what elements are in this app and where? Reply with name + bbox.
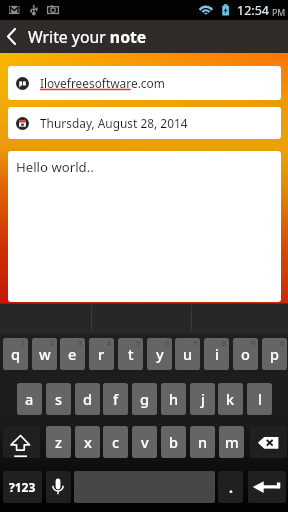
button[interactable]: Backspace (250, 426, 287, 458)
staticText: Ilovefreesoftware.com (40, 75, 165, 91)
staticText: k (226, 389, 235, 409)
button[interactable]: k (218, 383, 243, 415)
button[interactable]: e (60, 338, 85, 370)
button[interactable]: j (190, 383, 215, 415)
button[interactable]: h (161, 383, 186, 415)
button[interactable]: Symbols (3, 471, 42, 503)
staticText: PM (272, 7, 286, 19)
button[interactable]: Shift (3, 426, 40, 458)
button[interactable]: Ilovefreesoftware.com (8, 66, 281, 100)
staticText: b (169, 432, 178, 452)
staticText: f (113, 389, 119, 409)
staticText: z (55, 432, 62, 452)
button[interactable]: f (103, 383, 128, 415)
staticText: 4 (107, 339, 112, 349)
staticText: w (39, 344, 51, 364)
staticText: v (141, 432, 149, 452)
button[interactable]: Voice input (46, 471, 71, 503)
staticText: l (258, 389, 262, 409)
staticText: 8 (222, 339, 227, 349)
staticText: q (11, 344, 20, 364)
staticText: h (169, 389, 179, 409)
button[interactable]: b (161, 426, 186, 458)
button[interactable]: y (147, 338, 172, 370)
button[interactable]: m (219, 426, 244, 458)
staticText: 3 (78, 339, 83, 349)
button[interactable]: u (175, 338, 200, 370)
button[interactable]: l (247, 383, 272, 415)
staticText: i (215, 344, 219, 364)
staticText: a (25, 389, 34, 409)
staticText: 12:54 (237, 2, 269, 19)
staticText: p (270, 344, 279, 364)
button[interactable]: t (118, 338, 143, 370)
staticText: 6 (165, 339, 170, 349)
other: Back (0, 20, 28, 53)
button[interactable]: q (3, 338, 28, 370)
button[interactable]: Back (0, 20, 288, 53)
staticText: Hello world.. (16, 158, 94, 176)
staticText: 9 (251, 339, 256, 349)
button[interactable]: Thursday, August 28, 2014 (8, 107, 281, 139)
staticText: t (128, 344, 134, 364)
button[interactable]: x (75, 426, 100, 458)
button[interactable]: Hello world.. (8, 151, 281, 302)
staticText: ?123 (9, 479, 36, 495)
button[interactable]: Enter (248, 471, 286, 503)
staticText: 2 (50, 339, 55, 349)
staticText: Write your note (28, 26, 147, 48)
staticText: d (83, 389, 92, 409)
staticText: m (225, 432, 239, 452)
button[interactable]: w (32, 338, 57, 370)
button[interactable]: Period (218, 471, 243, 503)
button[interactable]: a (17, 383, 42, 415)
button[interactable]: v (132, 426, 157, 458)
staticText: s (55, 389, 63, 409)
staticText: e (68, 344, 77, 364)
staticText: o (241, 344, 250, 364)
staticText: . (229, 478, 233, 497)
button[interactable]: p (262, 338, 287, 370)
button[interactable]: c (103, 426, 128, 458)
button[interactable]: o (233, 338, 258, 370)
staticText: Thursday, August 28, 2014 (40, 115, 188, 131)
button[interactable]: n (190, 426, 215, 458)
staticText: g (140, 389, 149, 409)
staticText: c (112, 432, 120, 452)
staticText: y (156, 344, 164, 364)
staticText: 1 (21, 339, 26, 349)
button[interactable]: g (132, 383, 157, 415)
staticText: x (84, 432, 92, 452)
button[interactable]: s (46, 383, 71, 415)
staticText: n (198, 432, 208, 452)
staticText: r (98, 344, 105, 364)
staticText: 7 (193, 339, 198, 349)
staticText: 0 (280, 339, 285, 349)
button[interactable]: z (46, 426, 71, 458)
staticText: 5 (136, 339, 141, 349)
button[interactable]: r (89, 338, 114, 370)
button[interactable]: d (75, 383, 100, 415)
staticText: u (183, 344, 193, 364)
staticText: j (201, 389, 205, 409)
button[interactable]: i (204, 338, 229, 370)
